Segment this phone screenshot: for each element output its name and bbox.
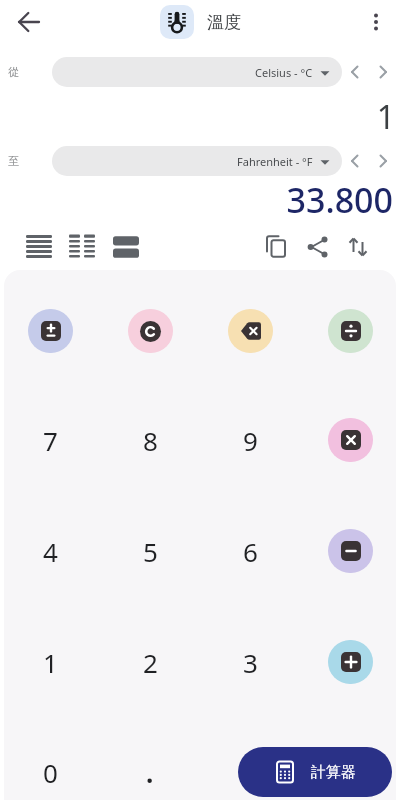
- staticText: 33.800: [0, 177, 393, 223]
- button[interactable]: 7: [0, 418, 100, 462]
- button[interactable]: [328, 529, 373, 573]
- staticText: 2: [143, 645, 158, 680]
- button[interactable]: 3: [200, 640, 300, 684]
- button[interactable]: 9: [200, 418, 300, 462]
- button[interactable]: [23, 231, 55, 263]
- staticText: 8: [143, 423, 158, 458]
- button[interactable]: [342, 231, 374, 263]
- button[interactable]: [370, 148, 396, 174]
- button[interactable]: .: [100, 747, 200, 797]
- staticText: 6: [243, 534, 258, 569]
- button[interactable]: [364, 10, 388, 34]
- staticText: Celsius - °C: [255, 65, 313, 80]
- button[interactable]: 4: [0, 529, 100, 573]
- button[interactable]: 計算器: [238, 747, 392, 797]
- button[interactable]: [110, 231, 142, 263]
- staticText: 9: [243, 423, 258, 458]
- staticText: 從: [8, 65, 19, 79]
- button[interactable]: [17, 10, 41, 34]
- button[interactable]: [328, 309, 373, 353]
- button[interactable]: [328, 640, 373, 684]
- button[interactable]: 8: [100, 418, 200, 462]
- button[interactable]: 0: [0, 747, 100, 797]
- staticText: 1: [43, 645, 58, 680]
- button[interactable]: 5: [100, 529, 200, 573]
- staticText: .: [146, 755, 154, 790]
- button[interactable]: [228, 309, 273, 353]
- staticText: 4: [43, 534, 58, 569]
- button[interactable]: [128, 309, 173, 353]
- button[interactable]: 1: [0, 640, 100, 684]
- staticText: 計算器: [311, 763, 356, 782]
- button[interactable]: 2: [100, 640, 200, 684]
- staticText: 0: [43, 755, 58, 790]
- staticText: 5: [143, 534, 158, 569]
- button[interactable]: [66, 231, 98, 263]
- button[interactable]: 6: [200, 529, 300, 573]
- button[interactable]: [342, 148, 368, 174]
- button[interactable]: [328, 418, 373, 462]
- button[interactable]: [28, 309, 73, 353]
- staticText: 3: [243, 645, 258, 680]
- button[interactable]: [370, 59, 396, 85]
- button[interactable]: [302, 231, 334, 263]
- button[interactable]: [260, 231, 292, 263]
- button[interactable]: Fahrenheit - °F: [52, 146, 342, 176]
- staticText: 至: [8, 154, 19, 168]
- button[interactable]: Celsius - °C: [52, 57, 342, 87]
- staticText: Fahrenheit - °F: [237, 154, 313, 169]
- button[interactable]: [342, 59, 368, 85]
- staticText: 7: [43, 423, 58, 458]
- staticText: 1: [0, 95, 395, 139]
- staticText: 溫度: [207, 12, 241, 33]
